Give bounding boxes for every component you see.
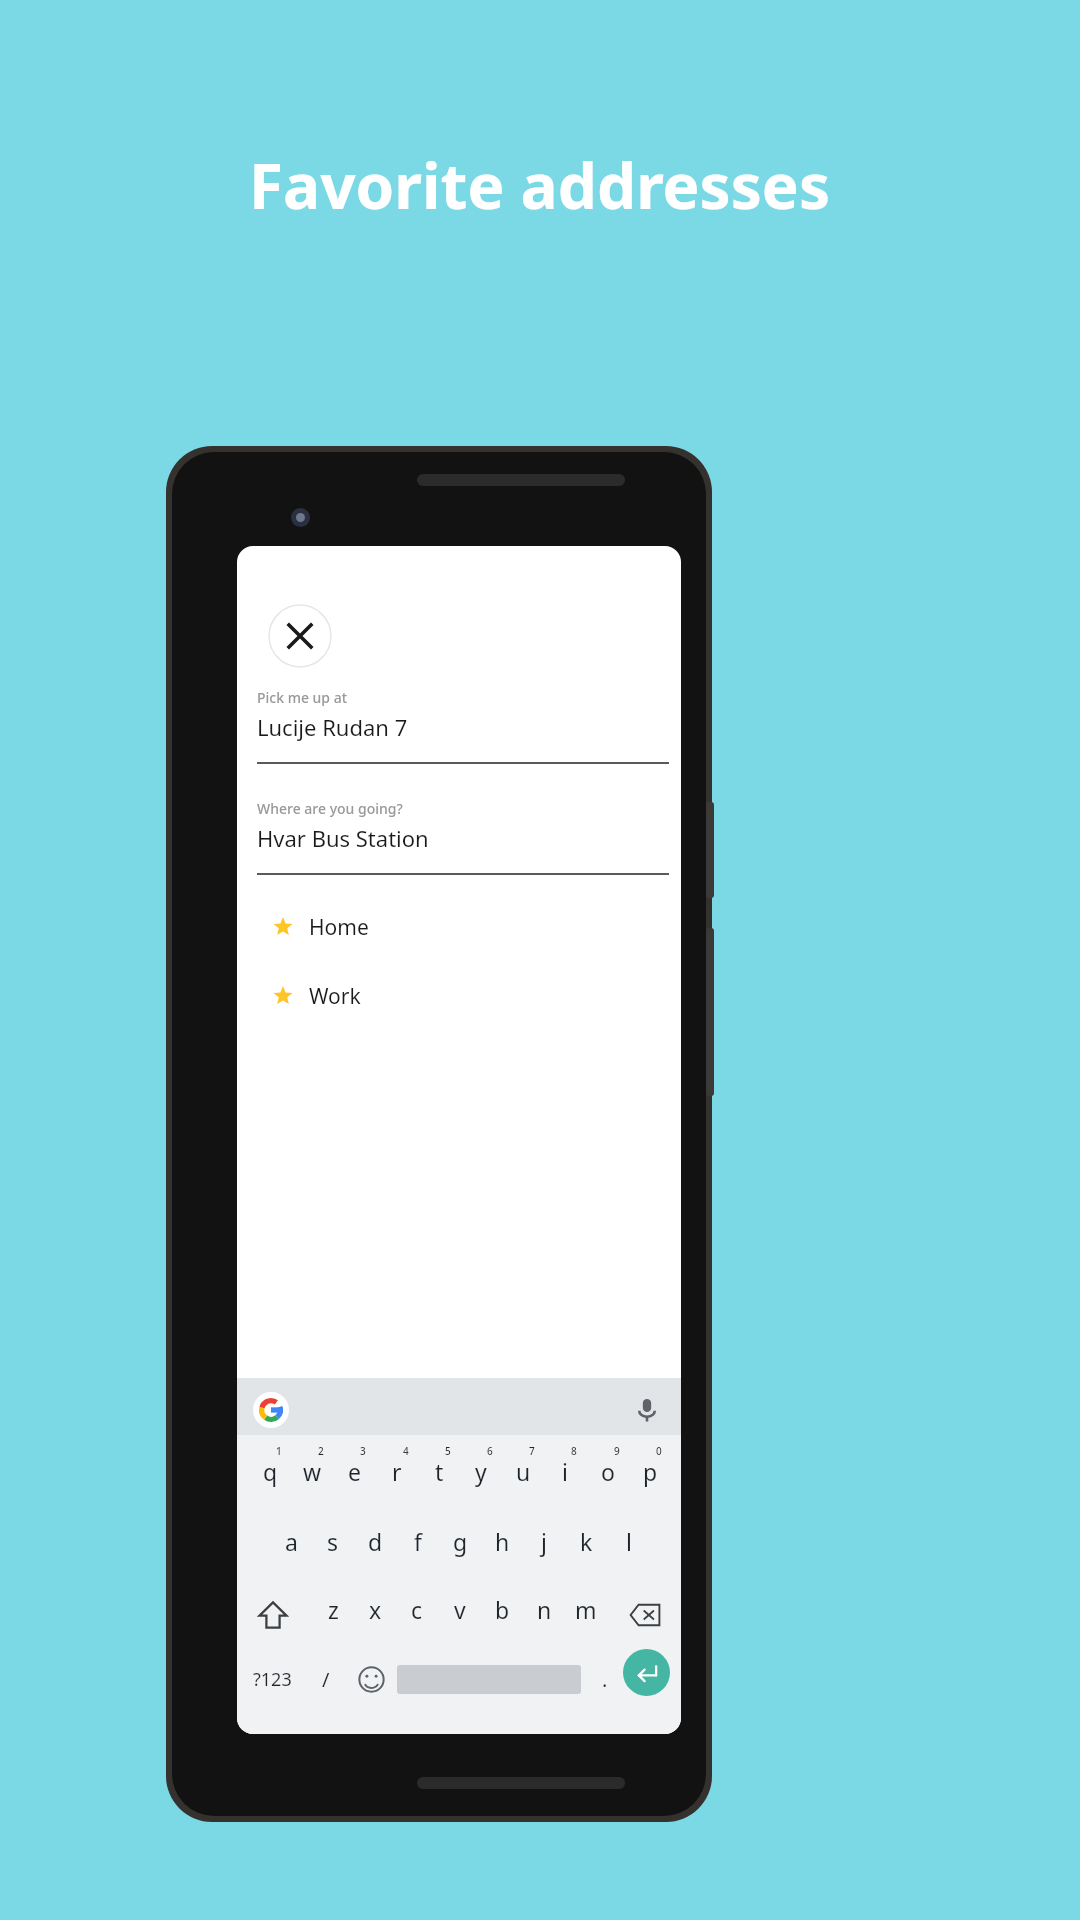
button[interactable]: ?123	[241, 1648, 303, 1710]
staticText: m	[575, 1594, 597, 1625]
button[interactable]: v	[439, 1582, 481, 1648]
button[interactable]: d	[354, 1512, 396, 1582]
staticText: r	[392, 1456, 402, 1487]
button[interactable]: Pick me up at	[257, 686, 669, 762]
staticText: /	[322, 1666, 330, 1693]
button[interactable]: 3	[333, 1442, 375, 1512]
staticText: s	[327, 1526, 339, 1557]
button[interactable]: Voice input	[629, 1392, 665, 1428]
button[interactable]: Where are you going?	[257, 797, 669, 873]
button[interactable]: c	[396, 1582, 438, 1648]
staticText: Lucije Rudan 7	[257, 712, 408, 742]
staticText: j	[541, 1526, 547, 1557]
button[interactable]: Shift	[249, 1582, 297, 1648]
staticText: l	[626, 1526, 632, 1557]
staticText: Favorite addresses	[249, 143, 831, 227]
button[interactable]: m	[565, 1582, 607, 1648]
button[interactable]: a	[270, 1512, 312, 1582]
button[interactable]: z	[312, 1582, 354, 1648]
button[interactable]: /	[305, 1648, 347, 1710]
button[interactable]: b	[481, 1582, 523, 1648]
button[interactable]: x	[354, 1582, 396, 1648]
button[interactable]: Google	[253, 1392, 289, 1428]
staticText: 5	[445, 1444, 451, 1458]
staticText: q	[263, 1456, 278, 1487]
button[interactable]: h	[481, 1512, 523, 1582]
staticText: f	[414, 1526, 422, 1557]
staticText: 8	[571, 1444, 577, 1458]
staticText: g	[453, 1526, 468, 1557]
staticText: e	[348, 1456, 361, 1487]
staticText: 3	[360, 1444, 366, 1458]
staticText: v	[454, 1594, 466, 1625]
button[interactable]: Emoji	[349, 1648, 393, 1710]
button[interactable]: 0	[629, 1442, 671, 1512]
button[interactable]: j	[523, 1512, 565, 1582]
button[interactable]: s	[312, 1512, 354, 1582]
staticText: h	[495, 1526, 510, 1557]
staticText: Pick me up at	[257, 688, 348, 707]
button[interactable]: Home	[257, 904, 669, 950]
staticText: x	[369, 1594, 382, 1625]
staticText: o	[601, 1456, 615, 1487]
button[interactable]: k	[565, 1512, 607, 1582]
staticText: 0	[656, 1444, 662, 1458]
staticText: Home	[309, 913, 369, 942]
staticText: 1	[276, 1444, 282, 1458]
staticText: a	[285, 1526, 298, 1557]
staticText: Hvar Bus Station	[257, 823, 429, 853]
staticText: c	[411, 1594, 423, 1625]
button[interactable]: 6	[460, 1442, 502, 1512]
staticText: k	[580, 1526, 593, 1557]
button[interactable]: Enter	[623, 1649, 670, 1696]
button[interactable]: Backspace	[621, 1582, 669, 1648]
staticText: u	[516, 1456, 531, 1487]
button[interactable]: .	[585, 1648, 625, 1710]
staticText: p	[643, 1456, 658, 1487]
button[interactable]: 7	[502, 1442, 544, 1512]
staticText: i	[562, 1456, 568, 1487]
button[interactable]: n	[523, 1582, 565, 1648]
staticText: 4	[403, 1444, 409, 1458]
button[interactable]: 2	[291, 1442, 333, 1512]
staticText: b	[495, 1594, 510, 1625]
staticText: Where are you going?	[257, 799, 403, 818]
staticText: w	[303, 1456, 322, 1487]
button[interactable]: 9	[587, 1442, 629, 1512]
staticText: .	[602, 1666, 608, 1693]
button[interactable]: g	[439, 1512, 481, 1582]
staticText: 6	[487, 1444, 493, 1458]
button[interactable]: Close	[268, 604, 332, 668]
button[interactable]: Work	[257, 973, 669, 1019]
staticText: 2	[318, 1444, 324, 1458]
staticText: ?123	[253, 1667, 292, 1692]
staticText: z	[328, 1594, 339, 1625]
button[interactable]: 4	[376, 1442, 418, 1512]
button[interactable]: 8	[544, 1442, 586, 1512]
staticText: 7	[529, 1444, 535, 1458]
staticText: 9	[614, 1444, 620, 1458]
button[interactable]: l	[608, 1512, 650, 1582]
button[interactable]: 1	[249, 1442, 291, 1512]
staticText: t	[435, 1456, 444, 1487]
staticText: Work	[309, 982, 361, 1011]
staticText: n	[537, 1594, 552, 1625]
button[interactable]: 5	[418, 1442, 460, 1512]
button[interactable]: f	[397, 1512, 439, 1582]
staticText: y	[475, 1456, 487, 1487]
staticText: d	[368, 1526, 383, 1557]
